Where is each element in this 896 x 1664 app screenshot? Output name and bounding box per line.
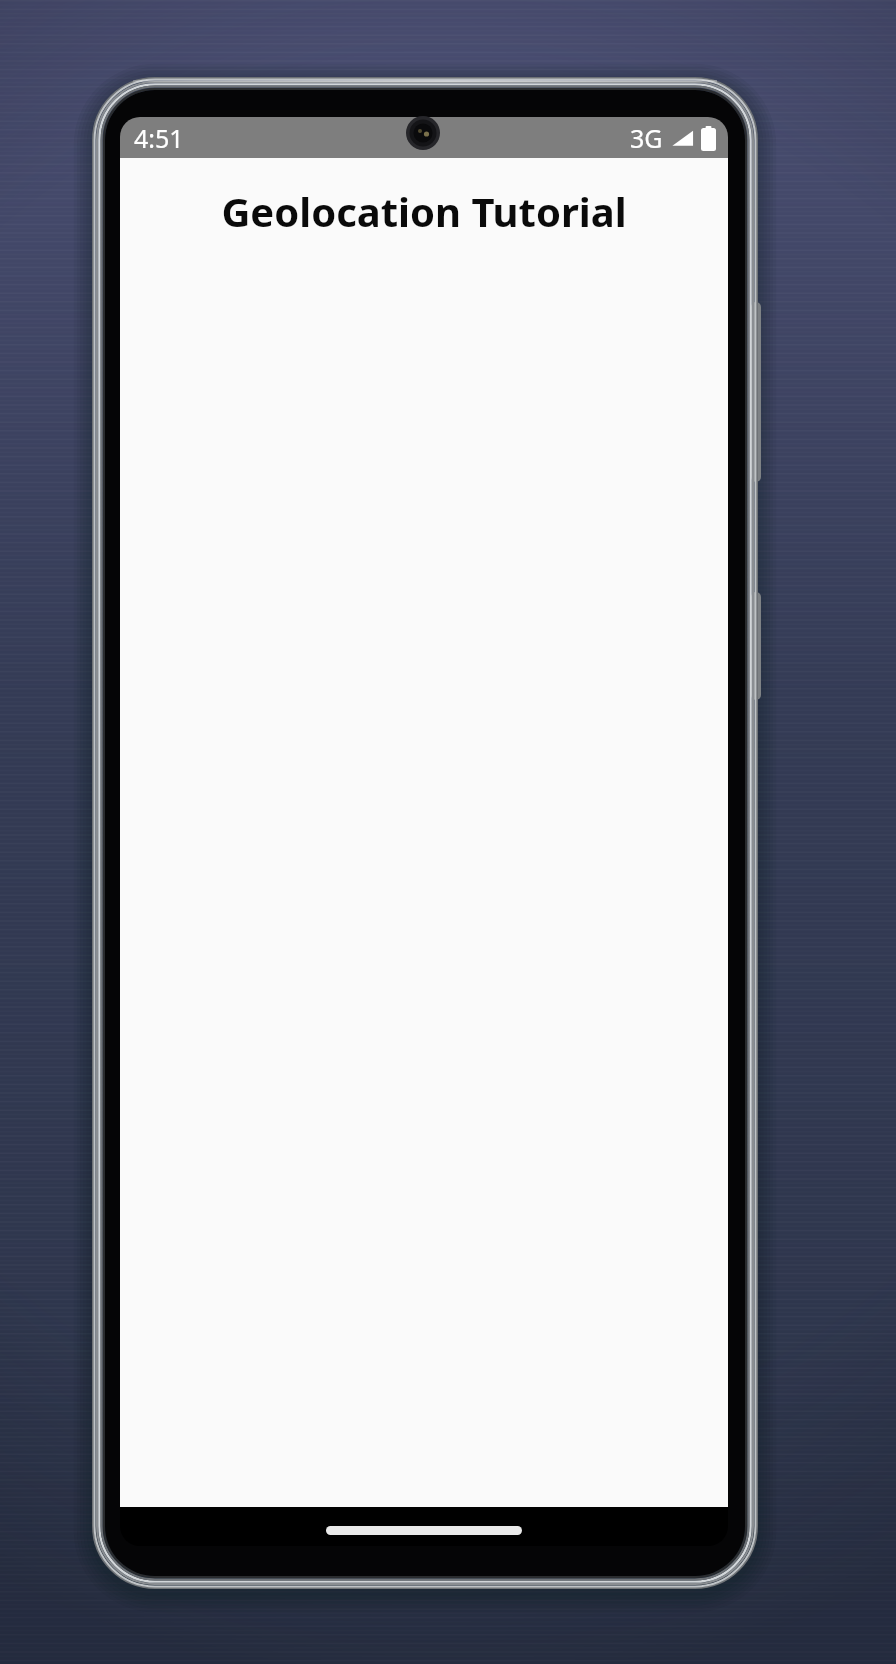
staticText: Samsung Galaxy S21: [111, 962, 153, 1277]
staticText: 3G: [630, 121, 663, 155]
button[interactable]: Home gesture bar: [326, 1526, 522, 1535]
staticText: Geolocation Tutorial: [120, 184, 728, 238]
staticText: 4:51: [134, 121, 184, 155]
button[interactable]: Geolocation Tutorial: [120, 184, 728, 238]
